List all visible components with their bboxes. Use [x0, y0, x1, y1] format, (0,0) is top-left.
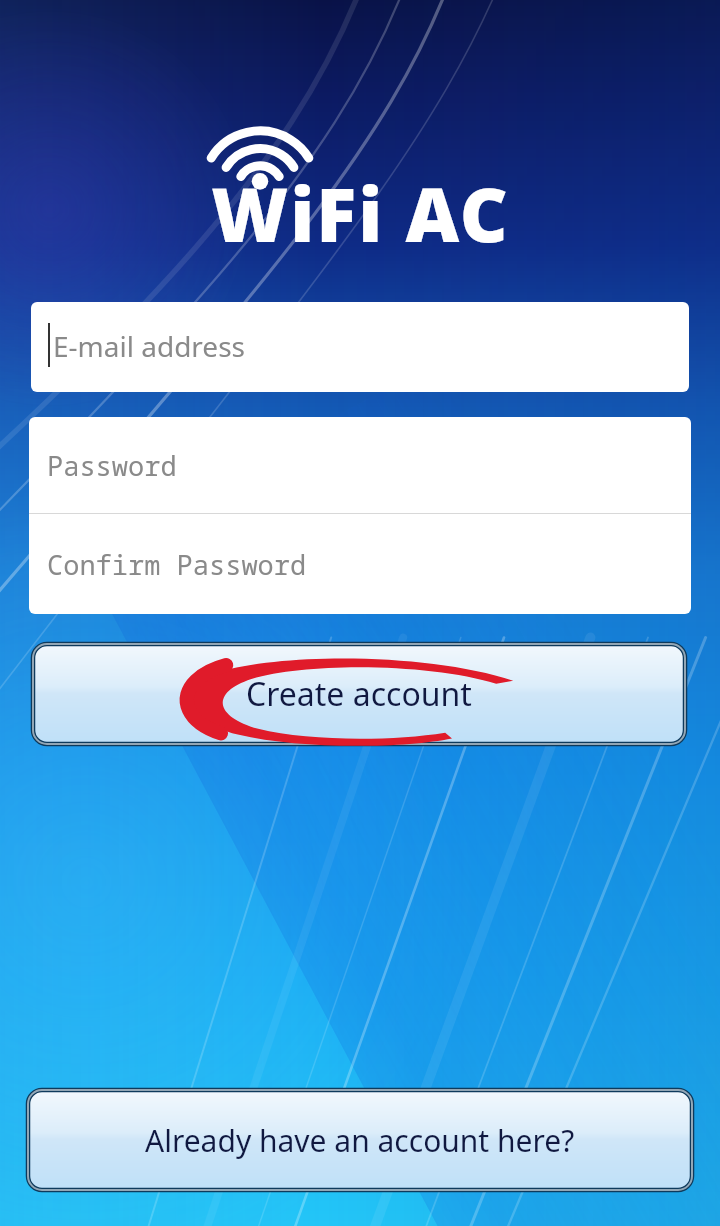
staticText: Password — [47, 447, 177, 484]
button[interactable]: E-mail address — [31, 302, 689, 392]
staticText: WiFi AC — [211, 163, 510, 264]
button[interactable]: Confirm Password — [29, 514, 691, 614]
button[interactable]: Password — [29, 417, 691, 513]
button[interactable]: Create account — [33, 644, 685, 744]
staticText: E-mail address — [53, 327, 245, 365]
button[interactable]: Already have an account here? — [28, 1090, 692, 1190]
staticText: Confirm Password — [47, 546, 307, 583]
staticText: Already have an account here? — [145, 1120, 575, 1161]
staticText: Create account — [246, 672, 472, 716]
